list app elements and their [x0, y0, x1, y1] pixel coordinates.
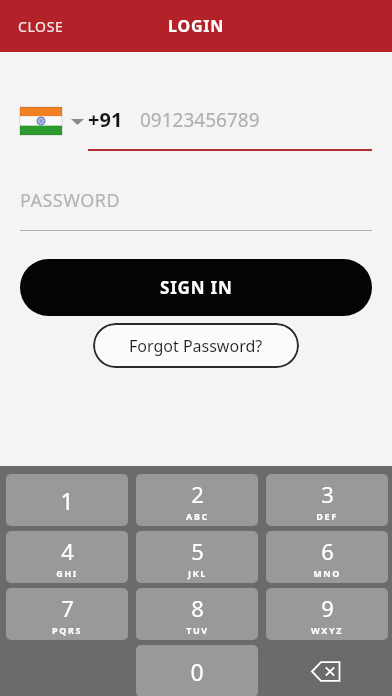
staticText: JKL: [188, 567, 207, 579]
staticText: 3: [321, 479, 334, 509]
staticText: 5: [191, 536, 204, 566]
button[interactable]: 4: [6, 531, 128, 583]
button[interactable]: 0: [136, 645, 258, 696]
staticText: 0: [190, 656, 204, 687]
button[interactable]: Select country code: [20, 107, 84, 135]
staticText: TUV: [186, 624, 209, 636]
staticText: 09123456789: [140, 107, 260, 133]
button[interactable]: 8: [136, 588, 258, 640]
button[interactable]: 9: [266, 588, 388, 640]
staticText: 6: [321, 536, 334, 566]
staticText: GHI: [56, 567, 78, 579]
staticText: 1: [60, 485, 74, 516]
button[interactable]: SIGN IN: [20, 259, 372, 316]
staticText: MNO: [313, 567, 341, 579]
staticText: WXYZ: [311, 624, 343, 636]
staticText: 7: [61, 593, 74, 623]
staticText: LOGIN: [168, 15, 225, 37]
button[interactable]: Backspace: [266, 645, 388, 696]
staticText: 9: [321, 593, 334, 623]
staticText: +91: [88, 106, 123, 133]
staticText: SIGN IN: [160, 276, 233, 299]
button[interactable]: CLOSE: [0, 5, 82, 48]
staticText: 2: [191, 479, 204, 509]
button[interactable]: 2: [136, 474, 258, 526]
staticText: 4: [61, 536, 74, 566]
button[interactable]: 6: [266, 531, 388, 583]
button[interactable]: 3: [266, 474, 388, 526]
button[interactable]: PASSWORD: [20, 188, 121, 213]
button[interactable]: Forgot Password?: [93, 323, 299, 368]
staticText: DEF: [316, 510, 338, 522]
button[interactable]: 1: [6, 474, 128, 526]
button[interactable]: 5: [136, 531, 258, 583]
staticText: Forgot Password?: [129, 335, 263, 357]
staticText: PQRS: [52, 624, 82, 636]
staticText: CLOSE: [18, 17, 64, 36]
button[interactable]: 7: [6, 588, 128, 640]
staticText: 8: [191, 593, 204, 623]
staticText: ABC: [186, 510, 209, 522]
